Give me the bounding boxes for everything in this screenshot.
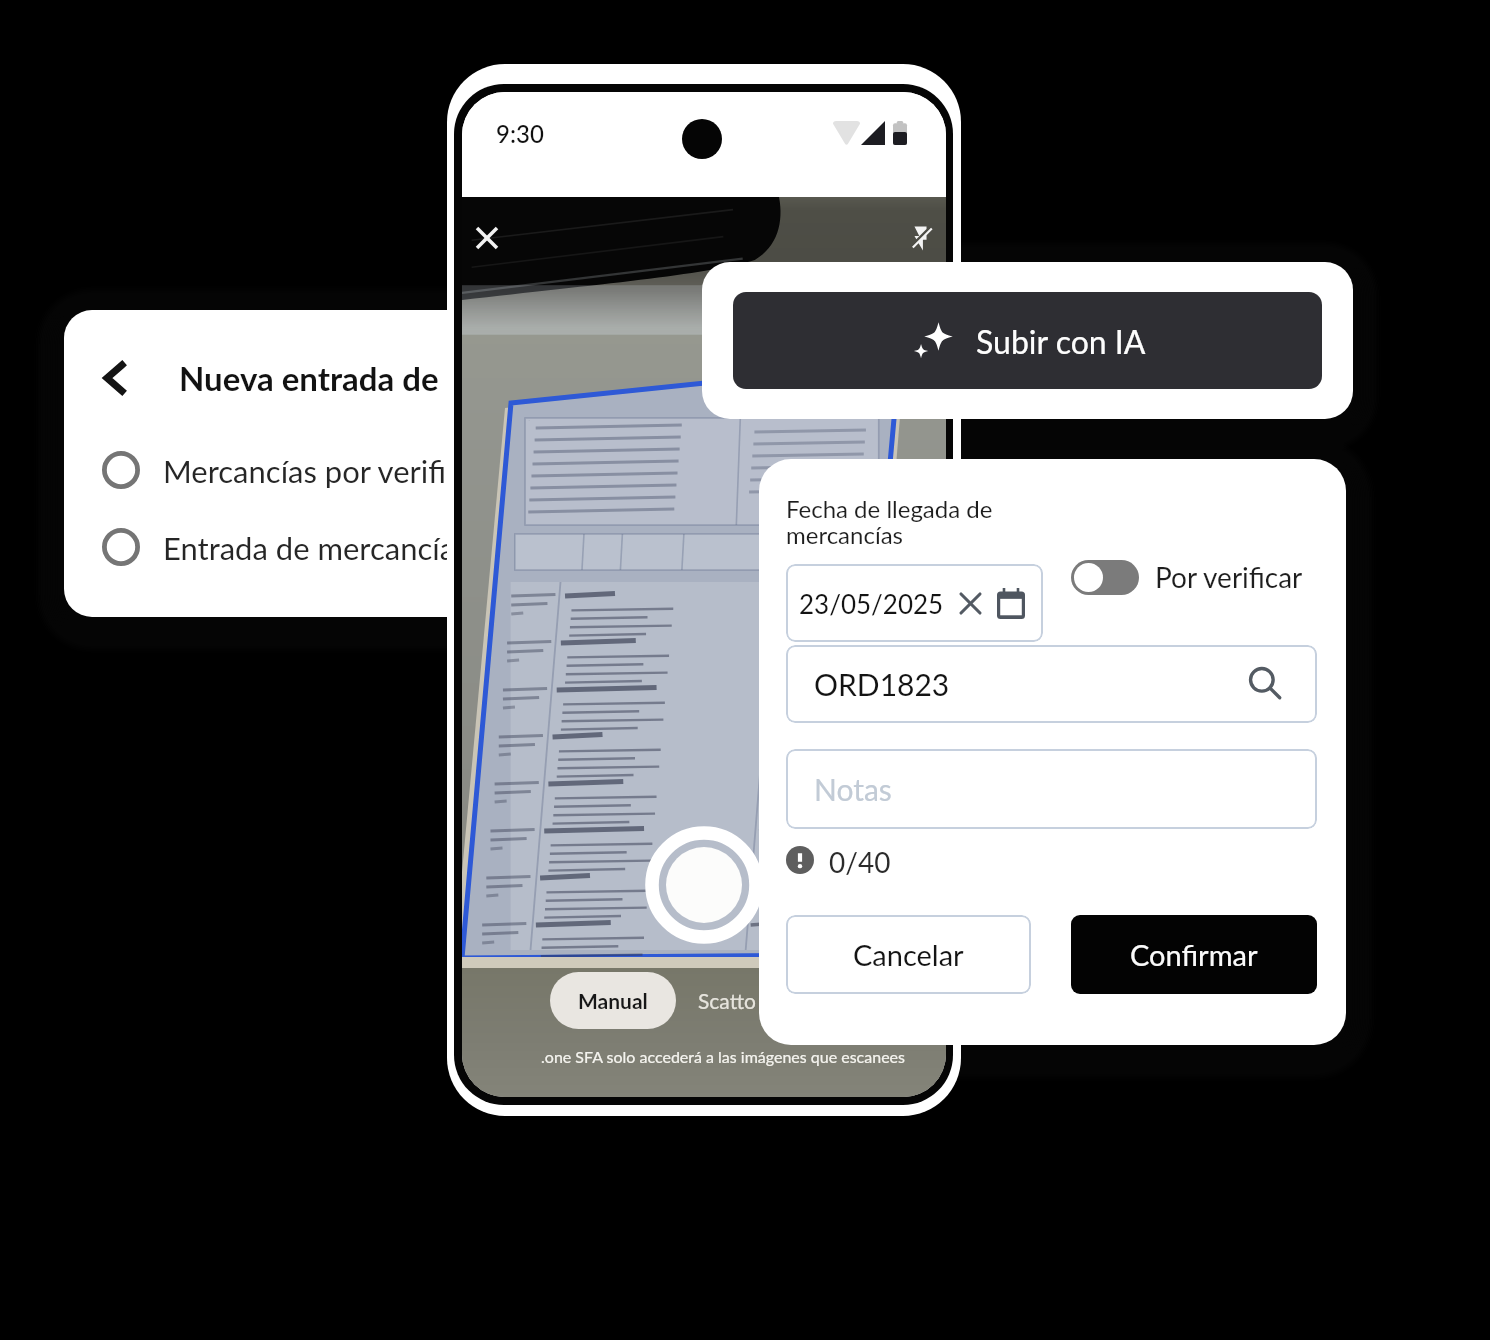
staticText: Mercancías por verificar: [163, 452, 488, 489]
button[interactable]: Manual: [550, 972, 676, 1029]
button[interactable]: ORD1823: [786, 645, 1317, 723]
staticText: Entrada de mercancías: [163, 529, 469, 566]
button[interactable]: Back: [64, 338, 164, 418]
staticText: Scatto: [698, 988, 756, 1013]
staticText: Notas: [814, 771, 892, 807]
button[interactable]: Cancelar: [786, 915, 1031, 994]
button[interactable]: Mercancías por verificar: [64, 431, 534, 509]
staticText: Confirmar: [1130, 937, 1258, 972]
staticText: Cancelar: [853, 937, 964, 972]
staticText: Fecha de llegada de mercancías: [786, 494, 993, 549]
staticText: 23/05/2025: [799, 588, 944, 619]
staticText: .one SFA solo accederá a las imágenes qu…: [481, 1047, 946, 1066]
button[interactable]: 23/05/2025: [786, 564, 1043, 642]
staticText: Subir con IA: [976, 322, 1146, 360]
button[interactable]: Confirmar: [1071, 915, 1317, 994]
button[interactable]: Subir con IA: [733, 292, 1322, 389]
button[interactable]: Entrada de mercancías: [64, 508, 534, 586]
staticText: Manual: [578, 988, 648, 1013]
button[interactable]: Close scanner: [462, 213, 512, 263]
staticText: 9:30: [496, 119, 544, 148]
staticText: Por verificar: [1155, 560, 1303, 594]
button[interactable]: Capture photo: [645, 826, 763, 944]
button[interactable]: Scatto: [685, 972, 769, 1029]
button[interactable]: Por verificar: [1071, 557, 1303, 597]
staticText: ORD1823: [814, 666, 950, 702]
button[interactable]: Notas: [786, 749, 1317, 829]
staticText: Nueva entrada de: [179, 358, 439, 398]
staticText: 0/40: [829, 845, 891, 875]
button[interactable]: Toggle flash: [895, 213, 945, 263]
